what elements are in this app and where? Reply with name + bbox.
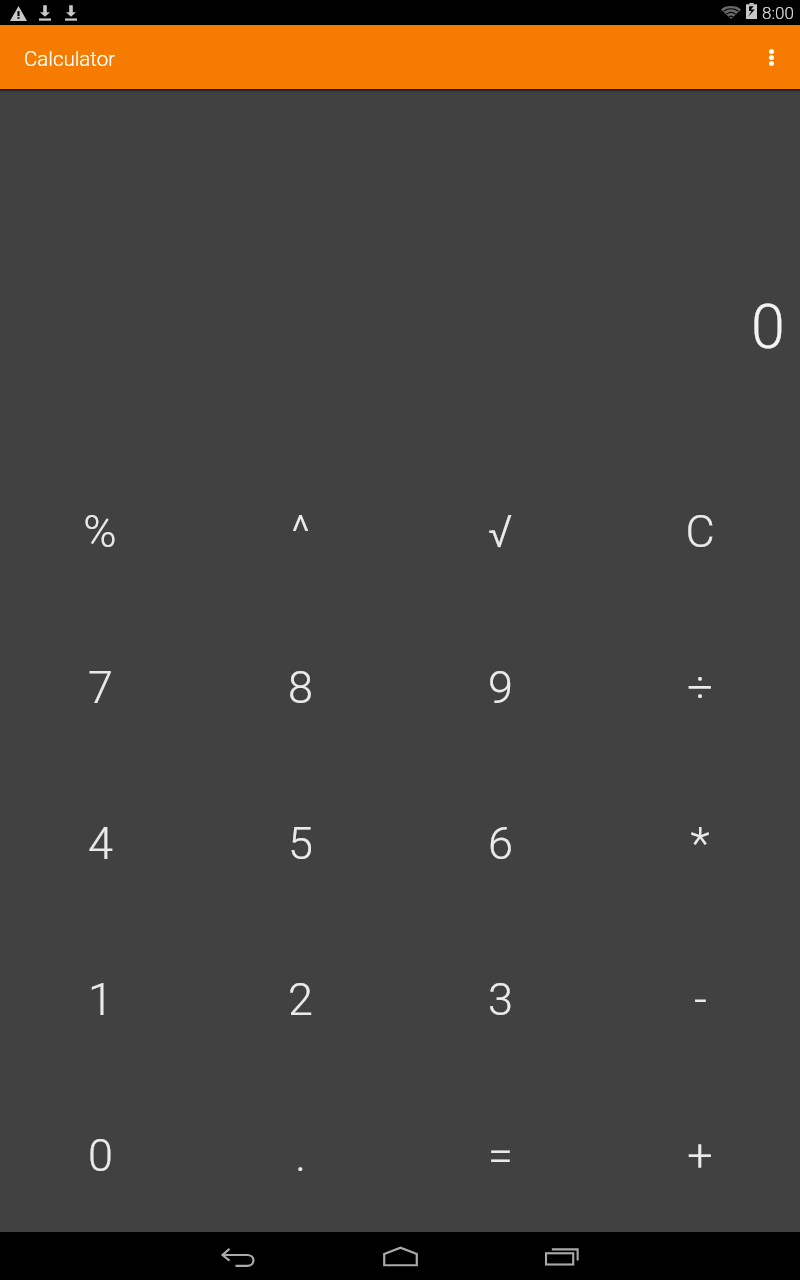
staticText: =: [488, 1129, 513, 1182]
button[interactable]: 3: [400, 920, 600, 1076]
button[interactable]: C: [600, 452, 800, 608]
staticText: %: [83, 505, 117, 558]
staticText: 0: [751, 291, 785, 362]
button[interactable]: 8: [200, 608, 400, 764]
button[interactable]: 1: [0, 920, 200, 1076]
staticText: 9: [488, 661, 513, 714]
staticText: .: [295, 1129, 306, 1182]
staticText: 1: [88, 973, 113, 1026]
staticText: ^: [291, 505, 310, 558]
button[interactable]: √: [400, 452, 600, 608]
button[interactable]: %: [0, 452, 200, 608]
button[interactable]: 5: [200, 764, 400, 920]
button[interactable]: 9: [400, 608, 600, 764]
staticText: 5: [288, 817, 313, 870]
button[interactable]: Home: [319, 1232, 481, 1280]
staticText: -: [694, 973, 707, 1026]
staticText: Calculator: [24, 47, 116, 71]
button[interactable]: .: [200, 1076, 400, 1232]
staticText: 6: [488, 817, 513, 870]
button[interactable]: ^: [200, 452, 400, 608]
button[interactable]: Back: [157, 1232, 319, 1280]
staticText: 8:00: [762, 3, 794, 23]
button[interactable]: 0: [0, 1076, 200, 1232]
button[interactable]: 4: [0, 764, 200, 920]
button[interactable]: ÷: [600, 608, 800, 764]
staticText: ÷: [687, 661, 713, 714]
staticText: 4: [88, 817, 113, 870]
staticText: 2: [288, 973, 313, 1026]
staticText: C: [685, 505, 715, 558]
button[interactable]: 6: [400, 764, 600, 920]
staticText: 7: [88, 661, 113, 714]
button[interactable]: -: [600, 920, 800, 1076]
button[interactable]: =: [400, 1076, 600, 1232]
staticText: 0: [88, 1129, 113, 1182]
button[interactable]: 2: [200, 920, 400, 1076]
staticText: +: [687, 1129, 713, 1182]
button[interactable]: 7: [0, 608, 200, 764]
staticText: 8: [288, 661, 313, 714]
staticText: *: [690, 817, 710, 870]
button[interactable]: Recent apps: [481, 1232, 643, 1280]
button[interactable]: *: [600, 764, 800, 920]
button[interactable]: +: [600, 1076, 800, 1232]
staticText: 3: [488, 973, 513, 1026]
button[interactable]: More options: [742, 25, 800, 89]
staticText: √: [488, 505, 513, 558]
